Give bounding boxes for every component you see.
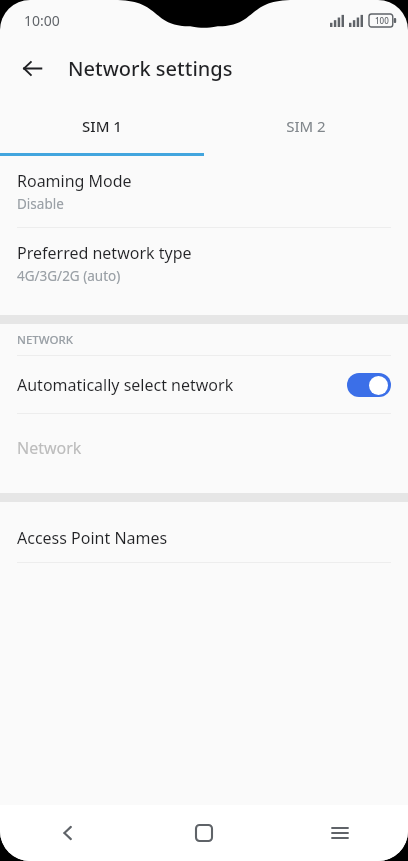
staticText: 100 xyxy=(375,15,389,26)
button[interactable]: Automatically select network xyxy=(0,356,408,413)
staticText: NETWORK xyxy=(17,332,74,348)
staticText: Disable xyxy=(17,195,64,213)
staticText: 10:00 xyxy=(24,11,60,30)
staticText: Preferred network type xyxy=(17,242,192,264)
staticText: SIM 2 xyxy=(286,116,326,136)
staticText: 4G/3G/2G (auto) xyxy=(17,267,121,285)
button[interactable]: Back xyxy=(10,46,54,90)
button[interactable]: Roaming Mode xyxy=(0,156,408,227)
staticText: SIM 1 xyxy=(82,116,122,136)
button[interactable]: Preferred network type xyxy=(0,228,408,299)
staticText: Network xyxy=(17,437,82,459)
staticText: Automatically select network xyxy=(17,374,347,396)
button[interactable]: Network xyxy=(0,414,408,481)
button[interactable]: SIM 1 xyxy=(0,96,204,156)
button[interactable]: Access Point Names xyxy=(0,514,408,562)
button[interactable]: SIM 2 xyxy=(204,96,408,156)
button[interactable]: Back xyxy=(0,805,136,861)
button[interactable]: Recent apps xyxy=(272,805,408,861)
staticText: Roaming Mode xyxy=(17,170,132,192)
staticText: Access Point Names xyxy=(17,527,168,549)
staticText: Network settings xyxy=(68,55,233,82)
button[interactable]: Home xyxy=(136,805,272,861)
